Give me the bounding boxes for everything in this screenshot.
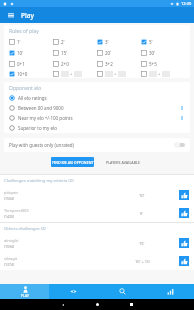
button[interactable]: Near my elo +/-100 points [9, 113, 185, 123]
staticText: Temporel003 [4, 208, 29, 213]
staticText: 10+0 [17, 71, 28, 77]
button[interactable]: Edit range [179, 103, 185, 113]
button[interactable]: Search [98, 284, 147, 299]
button[interactable]: Between 00 and 9000 [9, 103, 185, 113]
button[interactable]: 2' [53, 36, 97, 47]
button[interactable]: 2+0 [53, 58, 97, 69]
staticText: PLAY [21, 293, 29, 298]
staticText: Near my elo +/-100 points [18, 115, 73, 121]
staticText: + [158, 71, 161, 76]
button[interactable]: 0+1 [9, 58, 53, 69]
staticText: (1594) [4, 244, 15, 249]
button[interactable]: 5+5 [141, 58, 185, 69]
staticText: Play with guests only (unrated) [9, 142, 74, 148]
button[interactable]: 20' [97, 47, 141, 58]
button[interactable]: Stats [147, 284, 194, 299]
staticText: Challenges matching my criteria (2) [4, 178, 74, 184]
staticText: 3' [105, 39, 109, 45]
staticText: PLAYERS AVAILABLE [106, 160, 140, 165]
button[interactable]: 15' [53, 47, 97, 58]
staticText: 15' [139, 241, 145, 246]
button[interactable]: FIND ME AN OPPONENT [51, 157, 94, 167]
button[interactable]: 3' [97, 36, 141, 47]
staticText: Play [21, 11, 34, 20]
button[interactable]: + [53, 69, 97, 78]
staticText: 10' [17, 50, 24, 56]
staticText: 20' [105, 50, 112, 56]
button[interactable]: Edit range [179, 113, 185, 123]
staticText: + [114, 71, 117, 76]
button[interactable]: 10' [9, 47, 53, 58]
button[interactable]: Accept challenge [179, 190, 189, 200]
button[interactable]: Play [0, 284, 49, 299]
button[interactable]: Superior to my elo [9, 123, 185, 133]
staticText: 12:00 [181, 1, 192, 6]
button[interactable]: + [97, 69, 141, 78]
staticText: (1374) [4, 262, 15, 267]
staticText: 30' [149, 50, 156, 56]
button[interactable]: 3+2 [97, 58, 141, 69]
button[interactable]: 1' [9, 36, 53, 47]
button[interactable]: Open navigation drawer [0, 7, 21, 23]
staticText: Superior to my elo [18, 125, 57, 131]
staticText: 0+1 [17, 61, 25, 67]
staticText: Between 00 and 9000 [18, 105, 64, 111]
button[interactable]: All elo ratings [9, 93, 185, 103]
staticText: 5+5 [149, 61, 157, 67]
staticText: silvagit [4, 256, 18, 261]
staticText: 5' [140, 211, 144, 216]
staticText: 1' [17, 39, 21, 45]
staticText: Others challenges (2) [4, 226, 46, 232]
button[interactable]: 5' [141, 36, 185, 47]
button[interactable]: silvagit [0, 252, 194, 270]
staticText: 2' [61, 39, 65, 45]
button[interactable]: Watch [49, 284, 98, 299]
button[interactable]: Recents [114, 299, 148, 310]
staticText: (1504) [4, 196, 15, 201]
button[interactable]: 10+0 [9, 69, 53, 78]
button[interactable]: 30' [141, 47, 185, 58]
button[interactable]: Accept challenge [179, 256, 189, 266]
staticText: + [70, 71, 73, 76]
staticText: All elo ratings [18, 95, 47, 101]
button[interactable]: almight [0, 234, 194, 252]
button[interactable]: ptitpois [0, 186, 194, 204]
button[interactable]: Accept challenge [179, 238, 189, 248]
button[interactable]: Temporel003 [0, 204, 194, 222]
staticText: Rules of play [9, 28, 39, 35]
button[interactable]: Accept challenge [179, 208, 189, 218]
staticText: 3+2 [105, 61, 113, 67]
staticText: Opponent elo [9, 85, 42, 92]
staticText: 10' [139, 193, 145, 198]
button[interactable]: PLAYERS AVAILABLE [101, 157, 144, 167]
staticText: 2+0 [61, 61, 69, 67]
staticText: 15' [61, 50, 68, 56]
button[interactable]: Home [80, 299, 114, 310]
button[interactable]: Play with guests only (unrated) [4, 138, 190, 152]
button[interactable]: + [141, 69, 185, 78]
staticText: FIND ME AN OPPONENT [52, 160, 94, 165]
button[interactable]: Back [46, 299, 80, 310]
staticText: 5' [149, 39, 153, 45]
staticText: 10' + 10 [135, 259, 150, 264]
staticText: (1420) [4, 214, 15, 219]
staticText: ptitpois [4, 190, 19, 195]
staticText: almight [4, 238, 19, 243]
